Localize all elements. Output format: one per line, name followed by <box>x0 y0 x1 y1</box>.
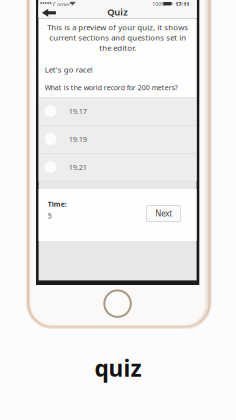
staticText: What is the world record for 200 meters? <box>45 83 178 92</box>
staticText: 19.21 <box>69 162 87 172</box>
staticText: 19.17 <box>69 106 87 116</box>
button[interactable]: 19.17 <box>39 97 197 125</box>
staticText: 19.19 <box>69 134 87 144</box>
button[interactable]: 19.19 <box>39 125 197 153</box>
staticText: quiz <box>94 353 141 383</box>
staticText: 17:11 <box>175 0 189 8</box>
staticText: Carrier <box>53 0 70 8</box>
staticText: Time: <box>48 199 67 209</box>
staticText: 100% <box>152 1 165 7</box>
button[interactable]: What is the world record for 200 meters? <box>39 78 197 97</box>
staticText: Next <box>155 208 172 219</box>
staticText: Let's go race! <box>45 64 93 75</box>
staticText: This is a preview of your quiz, it shows… <box>47 22 188 53</box>
button[interactable]: Next <box>147 205 181 221</box>
button[interactable]: 19.21 <box>39 153 197 181</box>
staticText: 5 <box>48 211 52 220</box>
staticText: Quiz <box>107 6 128 18</box>
button[interactable]: Let's go race! <box>39 61 197 78</box>
button[interactable]: Back <box>39 6 63 18</box>
